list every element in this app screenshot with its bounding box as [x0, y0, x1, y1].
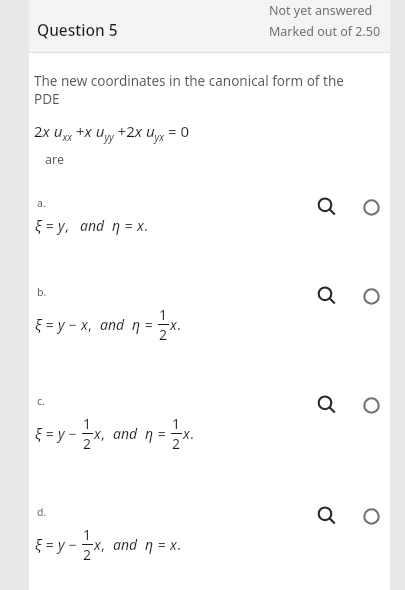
staticText: y — [58, 424, 65, 443]
staticText: x — [170, 315, 177, 334]
staticText: x — [94, 535, 101, 554]
staticText: , — [65, 216, 80, 235]
staticText: η — [145, 424, 154, 443]
button[interactable]: Select answer — [356, 192, 386, 222]
staticText: and — [80, 216, 108, 235]
staticText: The new coordinates in the canonical for… — [34, 72, 372, 108]
button[interactable]: Select answer — [356, 501, 386, 531]
staticText: d. — [37, 505, 47, 519]
button[interactable]: Select answer — [356, 281, 386, 311]
staticText: x — [81, 315, 88, 334]
staticText: 2x uxx +x uyy +2x uyx = 0 — [34, 121, 190, 143]
button[interactable]: b. — [32, 235, 386, 344]
staticText: = — [141, 315, 157, 334]
staticText: 1 — [83, 525, 92, 544]
button[interactable]: Enlarge image — [314, 503, 340, 529]
staticText: , — [101, 535, 113, 554]
staticText: , — [88, 315, 100, 334]
staticText: . — [177, 315, 181, 334]
staticText: η — [112, 216, 121, 235]
staticText: 2 — [159, 325, 168, 344]
staticText: and — [100, 315, 128, 334]
staticText: and — [113, 535, 141, 554]
staticText: . — [177, 535, 181, 554]
staticText: 2 — [83, 434, 92, 453]
staticText: y — [58, 315, 65, 334]
staticText: 1 — [172, 414, 181, 433]
button[interactable]: Question 5 — [29, 0, 390, 52]
staticText: Not yet answered — [269, 2, 373, 19]
staticText: . — [190, 424, 194, 443]
button[interactable]: Enlarge image — [314, 194, 340, 220]
button[interactable]: Enlarge image — [314, 283, 340, 309]
staticText: 1 — [83, 414, 92, 433]
button[interactable]: a. — [32, 168, 386, 235]
staticText: , — [101, 424, 113, 443]
staticText: Question 5 — [37, 19, 118, 40]
staticText: Marked out of 2.50 — [269, 23, 381, 40]
button[interactable]: Enlarge image — [314, 392, 340, 418]
button[interactable]: Select answer — [356, 390, 386, 420]
staticText: 2 — [83, 545, 92, 564]
staticText: x — [137, 216, 144, 235]
staticText: ξ — [35, 315, 42, 334]
staticText: − — [65, 424, 81, 443]
staticText: = — [154, 535, 170, 554]
staticText: y — [58, 216, 65, 235]
staticText: η — [145, 535, 154, 554]
staticText: ξ — [35, 216, 42, 235]
staticText: = — [154, 424, 170, 443]
button[interactable]: d. — [32, 453, 386, 564]
staticText: x — [183, 424, 190, 443]
staticText: and — [113, 424, 141, 443]
staticText: a. — [37, 196, 46, 210]
staticText: = — [121, 216, 137, 235]
staticText: are — [45, 151, 64, 168]
staticText: = — [42, 535, 58, 554]
staticText: . — [144, 216, 148, 235]
staticText: c. — [37, 394, 45, 408]
staticText: ξ — [35, 424, 42, 443]
staticText: η — [132, 315, 141, 334]
staticText: x — [94, 424, 101, 443]
staticText: x — [170, 535, 177, 554]
staticText: y — [58, 535, 65, 554]
staticText: = — [42, 216, 58, 235]
staticText: 2 — [172, 434, 181, 453]
staticText: 1 — [159, 305, 168, 324]
staticText: − — [65, 315, 81, 334]
staticText: ξ — [35, 535, 42, 554]
staticText: − — [65, 535, 81, 554]
staticText: = — [42, 315, 58, 334]
staticText: b. — [37, 285, 47, 299]
button[interactable]: c. — [32, 344, 386, 453]
staticText: = — [42, 424, 58, 443]
